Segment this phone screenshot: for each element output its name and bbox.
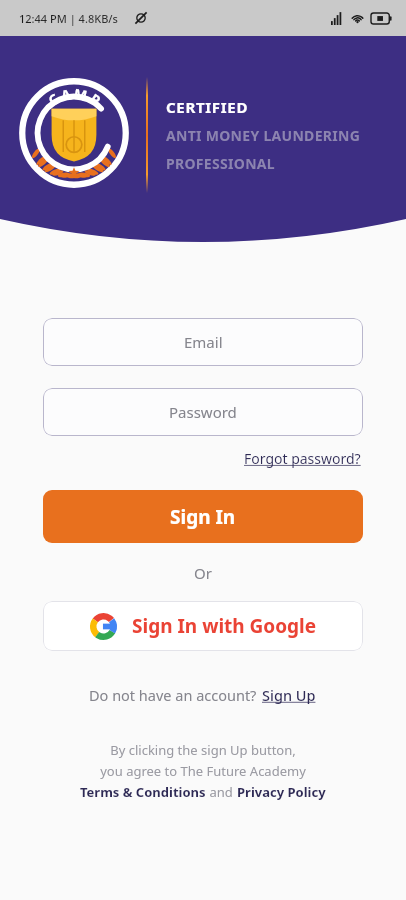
staticText: A [59, 84, 73, 105]
staticText: Sign In [170, 504, 236, 530]
staticText: PROFESSIONAL [166, 154, 275, 173]
staticText: C [44, 89, 63, 110]
staticText: and [206, 783, 237, 801]
staticText: 12:44 PM | 4.8KB/s [19, 11, 118, 26]
button[interactable]: Privacy Policy [237, 783, 326, 801]
staticText: M [72, 84, 90, 105]
staticText: Sign In with Google [132, 613, 317, 639]
button[interactable]: Sign Up [261, 683, 317, 707]
button[interactable]: Forgot password? [242, 446, 363, 471]
button[interactable]: Google logo [43, 601, 363, 651]
staticText: Password [169, 402, 237, 422]
staticText: CERTIFIED [166, 97, 249, 117]
staticText: Terms & Conditions [80, 783, 206, 801]
staticText: Privacy Policy [237, 783, 326, 801]
staticText: you agree to The Future Academy [43, 762, 363, 780]
staticText: P [86, 89, 104, 110]
staticText: Email [184, 332, 223, 352]
staticText: Do not have an account? [89, 685, 261, 705]
other: Google logo [90, 613, 117, 640]
button[interactable]: Email [43, 318, 363, 366]
staticText: Sign Up [262, 685, 316, 705]
button[interactable]: Terms & Conditions [80, 783, 206, 801]
staticText: By clicking the sign Up button, [43, 741, 363, 759]
button[interactable]: Password [43, 388, 363, 436]
button[interactable]: Sign In [43, 490, 363, 543]
staticText: Forgot password? [244, 449, 361, 468]
staticText: ANTI MONEY LAUNDERING [166, 126, 361, 145]
staticText: Or [194, 563, 212, 583]
